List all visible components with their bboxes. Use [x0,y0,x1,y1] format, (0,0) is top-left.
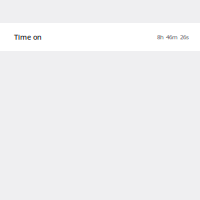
button[interactable]: Time on [0,23,200,51]
staticText: 8h 46m 26s [157,33,189,41]
staticText: Time on [14,32,42,42]
